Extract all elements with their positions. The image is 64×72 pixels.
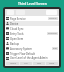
staticText: Accessory System <box>10 47 52 51</box>
staticText: Cloud Sync <box>10 27 58 31</box>
staticText: Backup <box>10 42 58 46</box>
staticText: Trigger Flow Default <box>10 52 58 56</box>
button[interactable]: Info <box>33 62 45 65</box>
button[interactable]: Device <box>5 21 59 26</box>
staticText: Device <box>10 22 58 26</box>
staticText: Page Service <box>10 17 48 21</box>
staticText: More <box>49 62 55 65</box>
button[interactable]: Home <box>6 62 19 65</box>
staticText: Info <box>37 62 41 65</box>
staticText: Home <box>10 62 16 65</box>
button[interactable]: Page Service <box>5 16 59 21</box>
staticText: Running <box>48 32 57 35</box>
button[interactable]: Accessory System <box>5 46 59 51</box>
button[interactable]: User Level of the Agent Admin <box>5 56 59 60</box>
button[interactable]: Cloud Sync <box>5 26 59 31</box>
staticText: User Level of the Agent Admin <box>10 56 58 60</box>
staticText: Setting <box>49 17 57 20</box>
button[interactable]: More <box>46 62 58 65</box>
button[interactable]: Entry Tools <box>5 31 59 36</box>
button[interactable]: List <box>20 62 32 65</box>
staticText: Edit <box>53 47 57 50</box>
staticText: Open Item <box>10 37 58 41</box>
button[interactable]: Open Item <box>5 36 59 41</box>
staticText: Third Level Screen <box>18 2 47 6</box>
staticText: Entry Tools <box>10 32 47 36</box>
button[interactable]: Trigger Flow Default <box>5 51 59 56</box>
staticText: List <box>24 62 28 65</box>
button[interactable]: Backup <box>5 41 59 46</box>
